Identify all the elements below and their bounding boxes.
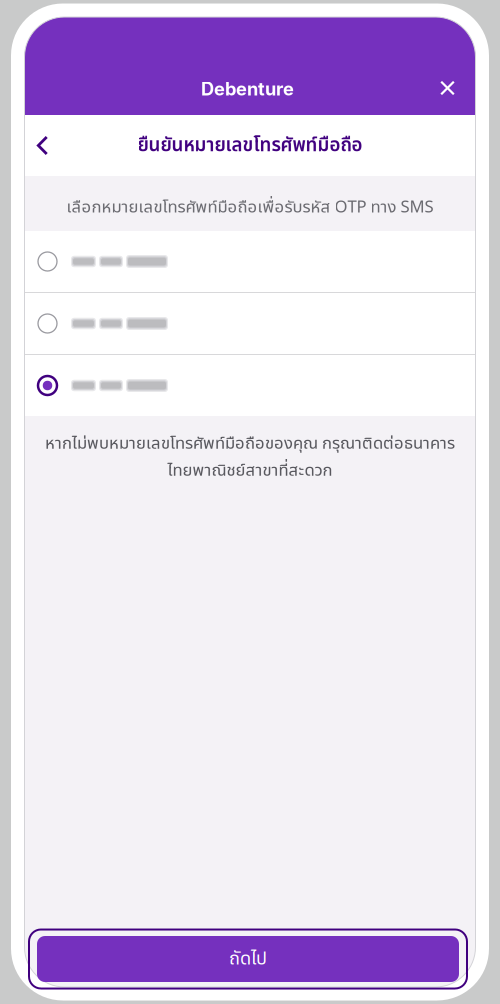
button[interactable]: Close [427,68,467,108]
button[interactable] [24,293,475,354]
staticText: ไทยพาณิชย์สาขาที่สะดวก [167,458,332,483]
staticText: หากไม่พบหมายเลขโทรศัพท์มือถือของคุณ กรุณ… [45,431,455,456]
button[interactable]: ถัดไป [28,928,468,989]
button[interactable] [24,355,475,416]
button[interactable]: Back [25,127,59,163]
button[interactable] [24,231,475,292]
staticText: Debenture [201,78,294,100]
staticText: ถัดไป [229,945,267,973]
staticText: ยืนยันหมายเลขโทรศัพท์มือถือ [137,131,362,160]
staticText: เลือกหมายเลขโทรศัพท์มือถือเพื่อรับรหัส O… [66,195,433,220]
